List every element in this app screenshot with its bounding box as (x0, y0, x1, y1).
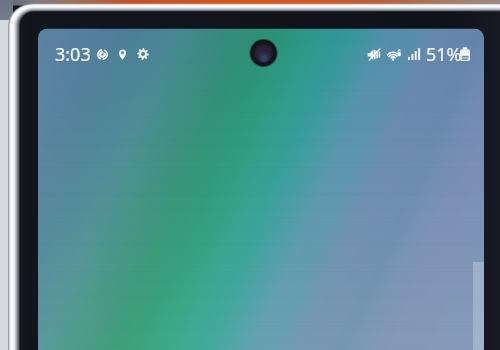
button[interactable]: Settings (137, 48, 149, 60)
button[interactable]: Wi-Fi connected (387, 48, 402, 61)
staticText: 51% (426, 42, 462, 66)
staticText: 3:03 (55, 42, 91, 66)
button[interactable]: App active (97, 49, 108, 60)
button[interactable]: Location in use (118, 48, 127, 60)
button[interactable]: Battery 51 percent (460, 47, 470, 61)
button[interactable]: Ringer muted (367, 48, 381, 61)
button[interactable]: Mobile signal (408, 48, 420, 60)
